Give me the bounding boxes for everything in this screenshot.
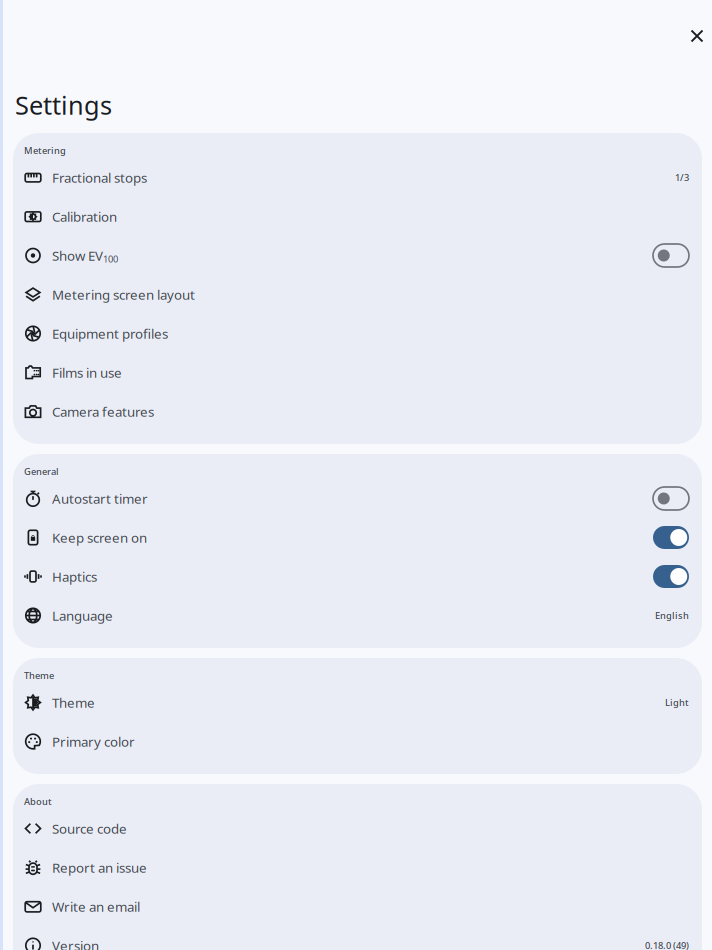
staticText: Metering (24, 144, 66, 157)
staticText: Language (52, 607, 113, 624)
button[interactable]: Source code (13, 809, 702, 848)
button[interactable]: Equipment profiles (13, 314, 702, 353)
staticText: 1/3 (675, 171, 689, 184)
staticText: Keep screen on (52, 529, 147, 546)
staticText: Films in use (52, 364, 122, 381)
staticText: Write an email (52, 898, 140, 915)
button[interactable]: Fractional stops (13, 158, 702, 197)
button[interactable]: Keep screen on (13, 518, 702, 557)
staticText: Source code (52, 820, 127, 837)
staticText: Equipment profiles (52, 325, 168, 342)
button[interactable]: Primary color (13, 722, 702, 761)
staticText: Fractional stops (52, 169, 147, 186)
button[interactable]: Language (13, 596, 702, 635)
button[interactable]: Report an issue (13, 848, 702, 887)
button[interactable]: Camera features (13, 392, 702, 431)
button[interactable]: Films in use (13, 353, 702, 392)
staticText: Light (665, 696, 689, 709)
staticText: Camera features (52, 403, 154, 420)
staticText: Version (52, 937, 99, 950)
button[interactable]: Autostart timer (13, 479, 702, 518)
staticText: Autostart timer (52, 490, 148, 507)
staticText: Show EV (52, 247, 103, 264)
staticText: 100 (103, 253, 118, 265)
staticText: About (24, 795, 52, 808)
staticText: Primary color (52, 733, 135, 750)
button[interactable]: Metering screen layout (13, 275, 702, 314)
staticText: Metering screen layout (52, 286, 195, 303)
staticText: 0.18.0 (49) (645, 939, 689, 950)
staticText: Report an issue (52, 859, 147, 876)
button[interactable]: Version (13, 926, 702, 950)
staticText: Theme (24, 669, 54, 682)
button[interactable]: Write an email (13, 887, 702, 926)
staticText: Calibration (52, 208, 117, 225)
button[interactable]: Show EV (13, 236, 702, 275)
button[interactable]: Calibration (13, 197, 702, 236)
staticText: Haptics (52, 568, 97, 585)
button[interactable]: Theme (13, 683, 702, 722)
staticText: Theme (52, 694, 95, 711)
staticText: Settings (15, 88, 112, 122)
button[interactable]: Close (682, 16, 712, 56)
staticText: English (655, 609, 689, 622)
button[interactable]: Haptics (13, 557, 702, 596)
staticText: General (24, 465, 59, 478)
